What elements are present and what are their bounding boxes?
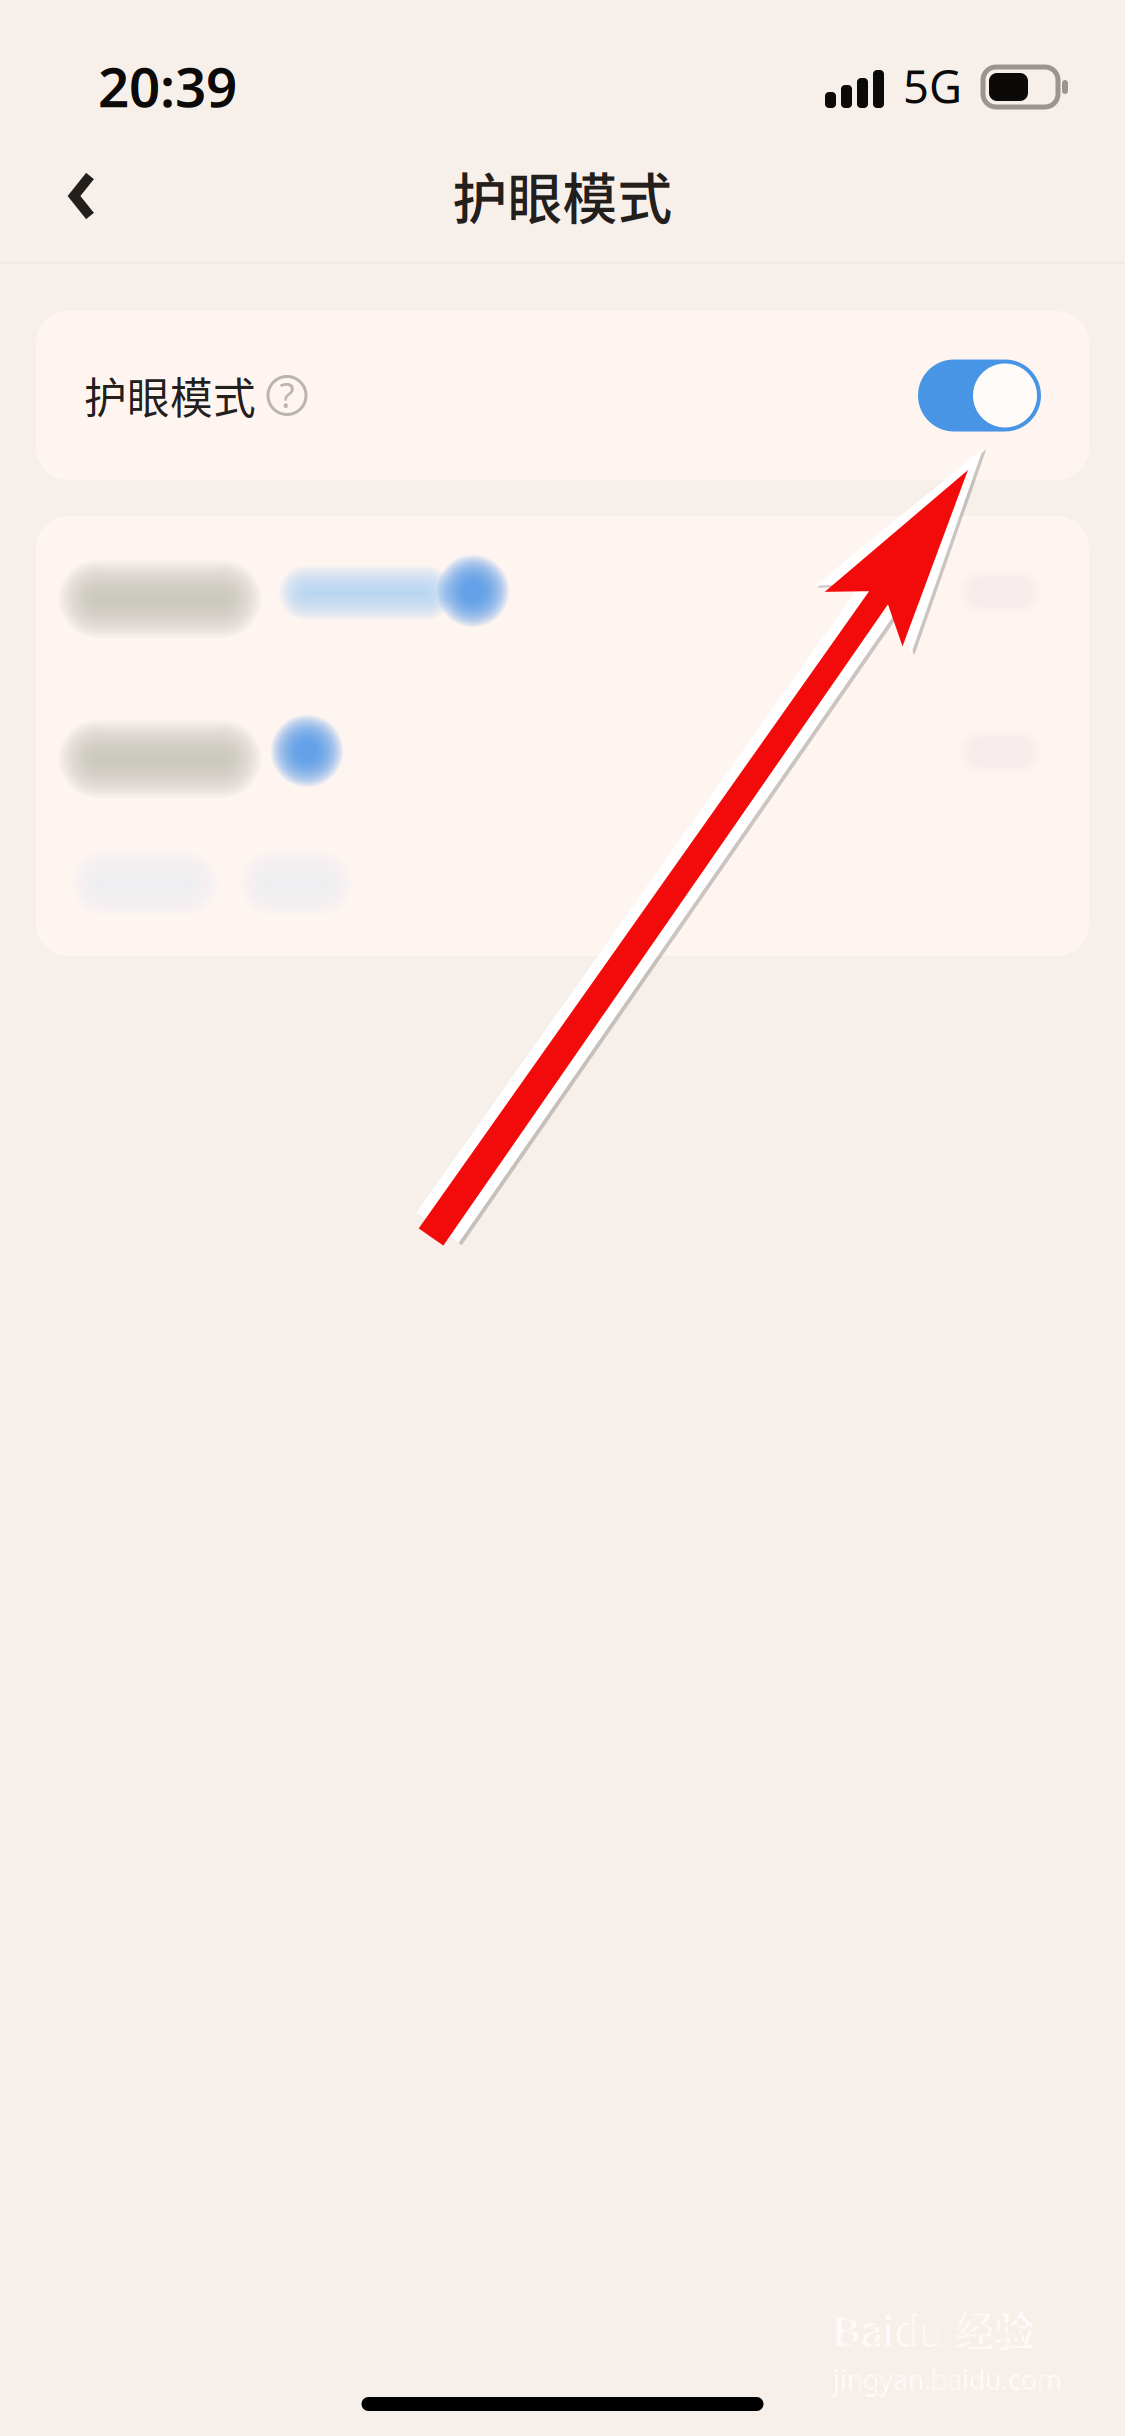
staticText: 护眼模式: [452, 155, 672, 235]
staticText: ?: [279, 371, 294, 417]
staticText: Baidu 经验: [840, 2302, 1026, 2356]
staticText: 护眼模式: [84, 365, 256, 426]
button[interactable]: Back: [33, 147, 131, 245]
staticText: jingyan.baidu.com: [833, 2362, 1062, 2397]
staticText: 20:39: [98, 50, 237, 122]
staticText: jingyan.baidu.com: [844, 2363, 1051, 2395]
staticText: Baidu 经验: [833, 2300, 1034, 2358]
button[interactable]: 护眼模式: [36, 311, 1089, 480]
staticText: 5G: [903, 56, 962, 116]
